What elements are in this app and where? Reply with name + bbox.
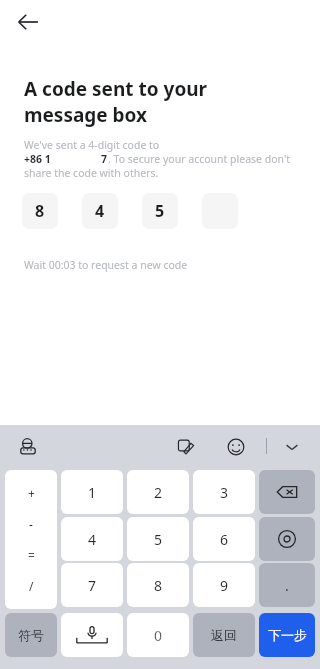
button[interactable]: Voice input bbox=[61, 613, 123, 657]
staticText: share the code with others. bbox=[24, 166, 159, 180]
staticText: 7 bbox=[101, 152, 108, 166]
button[interactable]: 6 bbox=[193, 517, 255, 561]
staticText: + bbox=[28, 485, 35, 501]
staticText: 3 bbox=[220, 483, 229, 502]
staticText: 9 bbox=[220, 576, 229, 595]
staticText: . To secure your account please don't bbox=[108, 152, 291, 166]
button[interactable]: 符号 bbox=[5, 613, 57, 657]
staticText: 5 bbox=[154, 530, 163, 549]
button[interactable]: 1 bbox=[61, 470, 123, 514]
button[interactable]: Switch keyboard bbox=[14, 433, 42, 461]
button[interactable]: Emoji bbox=[222, 433, 250, 461]
button[interactable]: 7 bbox=[61, 563, 123, 607]
staticText: +86 1 bbox=[24, 152, 51, 166]
staticText: 4 bbox=[88, 530, 97, 549]
staticText: 1 bbox=[88, 483, 97, 502]
staticText: 4 bbox=[95, 200, 105, 222]
button[interactable]: Wait 00:03 to request a new code bbox=[24, 258, 188, 272]
staticText: 5 bbox=[155, 200, 165, 222]
staticText: 8 bbox=[154, 576, 163, 595]
button[interactable]: 3 bbox=[193, 470, 255, 514]
staticText: 8 bbox=[35, 200, 45, 222]
staticText: 0 bbox=[154, 626, 163, 645]
button[interactable]: Code digit 3 bbox=[142, 193, 178, 229]
staticText: 6 bbox=[220, 530, 229, 549]
staticText: 返回 bbox=[211, 627, 237, 643]
staticText: 听 bbox=[156, 620, 178, 648]
button[interactable]: Back bbox=[8, 2, 48, 42]
button[interactable]: Code digit 2 bbox=[82, 193, 118, 229]
button[interactable]: 9 bbox=[193, 563, 255, 607]
button[interactable]: 0 bbox=[127, 613, 189, 657]
staticText: = bbox=[28, 547, 35, 563]
button[interactable]: Hide keyboard bbox=[278, 433, 306, 461]
button[interactable]: 4 bbox=[61, 517, 123, 561]
button[interactable]: 5 bbox=[127, 517, 189, 561]
staticText: 7 bbox=[88, 576, 97, 595]
button[interactable]: 返回 bbox=[193, 613, 255, 657]
button[interactable]: At sign bbox=[259, 517, 315, 561]
staticText: 符号 bbox=[18, 627, 44, 643]
staticText: 2 bbox=[154, 483, 163, 502]
staticText: - bbox=[29, 516, 33, 532]
staticText: . bbox=[285, 576, 289, 595]
staticText: A code sent to your message box bbox=[24, 76, 296, 127]
staticText: We've sent a 4-digit code to bbox=[24, 138, 160, 152]
button[interactable]: Backspace bbox=[259, 470, 315, 514]
staticText: / bbox=[29, 578, 34, 594]
button[interactable]: 下一步 bbox=[259, 613, 315, 657]
staticText: 下一步 bbox=[268, 627, 307, 643]
button[interactable]: + bbox=[5, 470, 57, 609]
button[interactable]: AI writing bbox=[172, 433, 200, 461]
button[interactable]: 2 bbox=[127, 470, 189, 514]
button[interactable]: 8 bbox=[127, 563, 189, 607]
button[interactable]: Code digit 1 bbox=[22, 193, 58, 229]
button[interactable]: . bbox=[259, 563, 315, 607]
